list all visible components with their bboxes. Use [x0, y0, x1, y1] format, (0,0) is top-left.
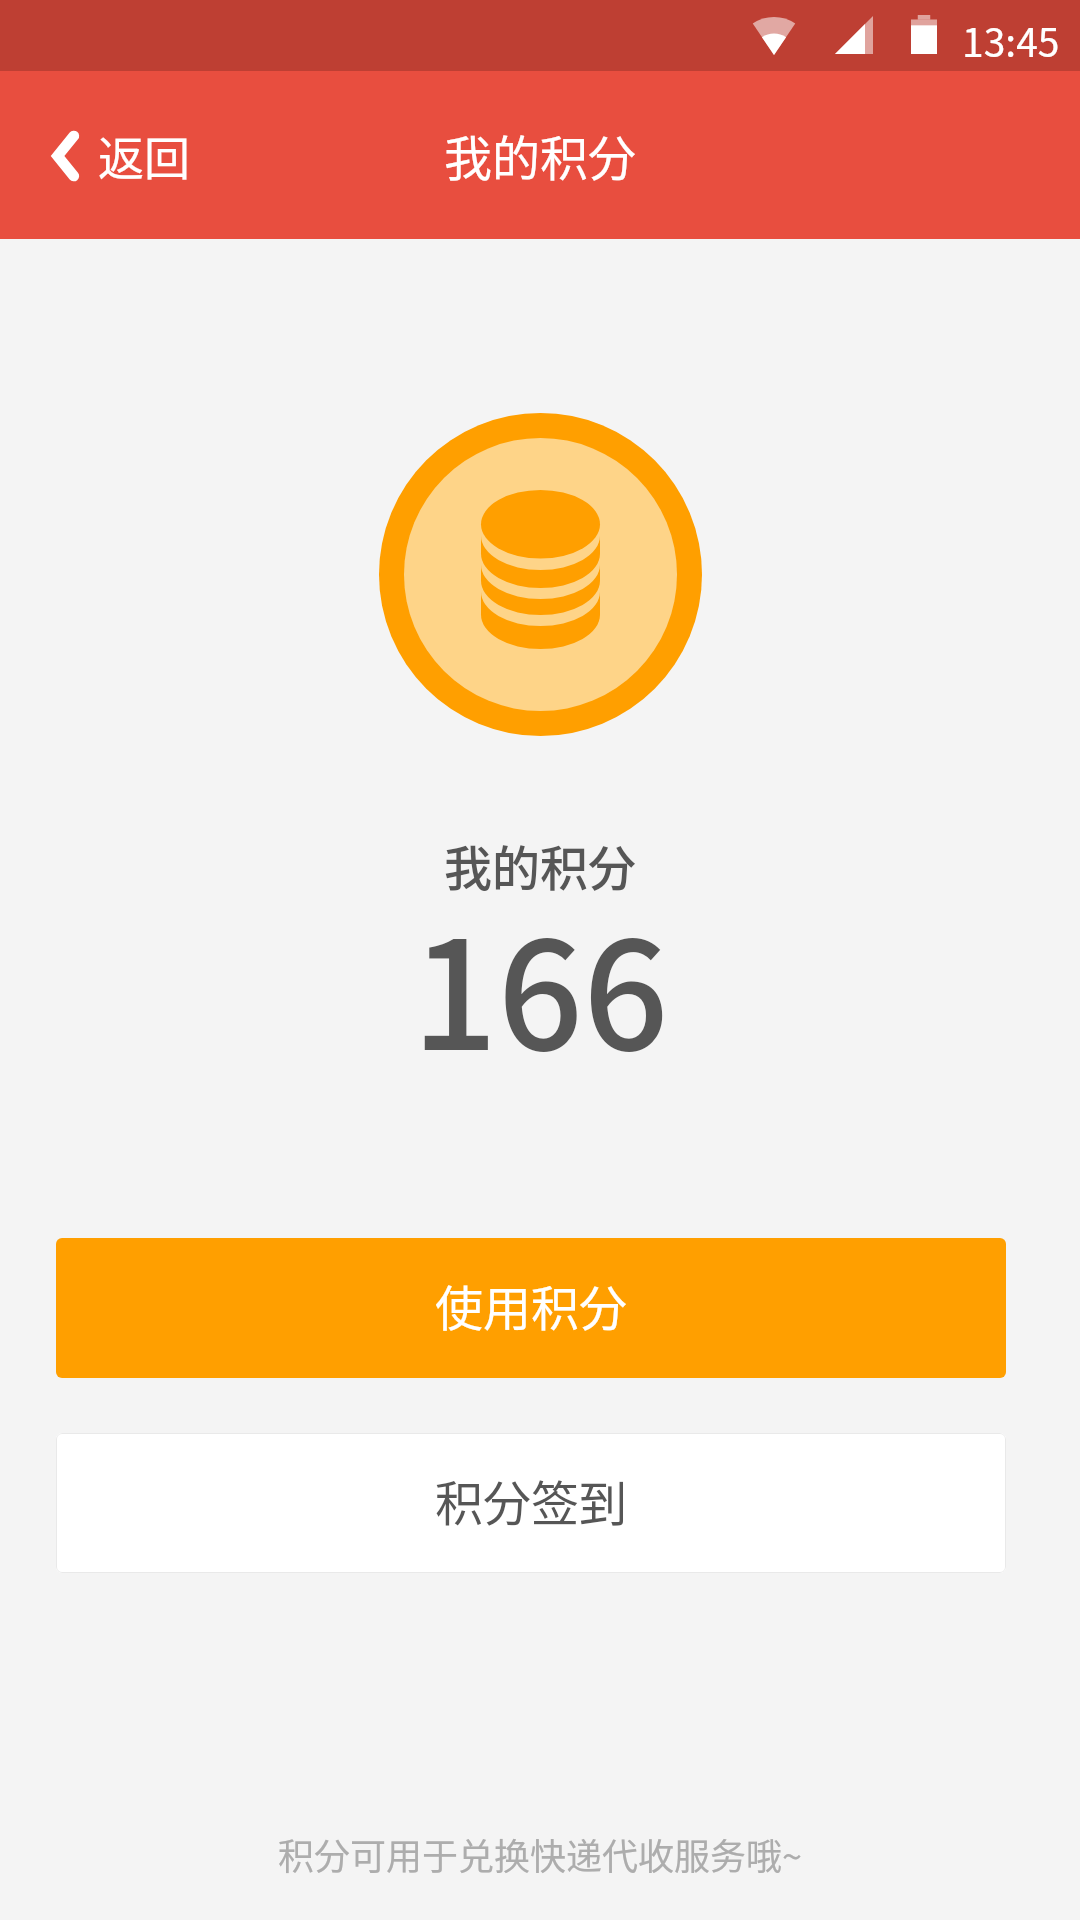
button[interactable]: 使用积分 — [56, 1238, 1006, 1378]
staticText: 166 — [412, 876, 669, 1093]
staticText: 我的积分 — [444, 120, 637, 190]
staticText: 我的积分 — [444, 830, 637, 900]
staticText: 返回 — [98, 122, 190, 189]
staticText: 13:45 — [962, 12, 1060, 68]
button[interactable]: 返回 Back — [40, 104, 202, 207]
staticText: 积分签到 — [435, 1465, 628, 1535]
staticText: 积分可用于兑换快递代收服务哦~ — [278, 1828, 802, 1880]
button[interactable]: 积分签到 — [56, 1433, 1006, 1573]
staticText: 使用积分 — [435, 1270, 628, 1340]
